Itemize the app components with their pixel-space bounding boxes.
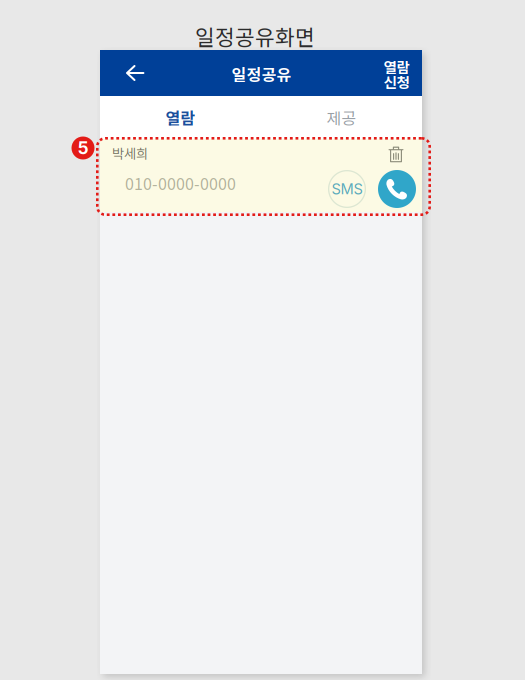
button[interactable]: 열람 bbox=[375, 51, 419, 97]
staticText: 박세희 bbox=[112, 143, 148, 163]
staticText: SMS bbox=[331, 180, 362, 198]
staticText: 열람 bbox=[165, 106, 195, 129]
button[interactable]: 삭제 bbox=[382, 140, 410, 168]
button[interactable]: SMS bbox=[328, 170, 366, 208]
staticText: 제공 bbox=[326, 106, 356, 129]
staticText: 신청 bbox=[384, 71, 410, 92]
staticText: 열람 bbox=[384, 56, 410, 77]
button[interactable]: 뒤로 가기 bbox=[113, 50, 157, 96]
staticText: 010-0000-0000 bbox=[125, 171, 236, 195]
staticText: 일정공유 bbox=[231, 62, 291, 86]
button[interactable]: 제공 bbox=[261, 96, 422, 139]
staticText: 5 bbox=[77, 137, 88, 158]
staticText: 일정공유화면 bbox=[195, 21, 315, 51]
button[interactable]: 박세희 bbox=[100, 139, 422, 212]
button[interactable]: 열람 bbox=[100, 96, 261, 139]
button[interactable]: 전화 걸기 bbox=[378, 170, 416, 208]
